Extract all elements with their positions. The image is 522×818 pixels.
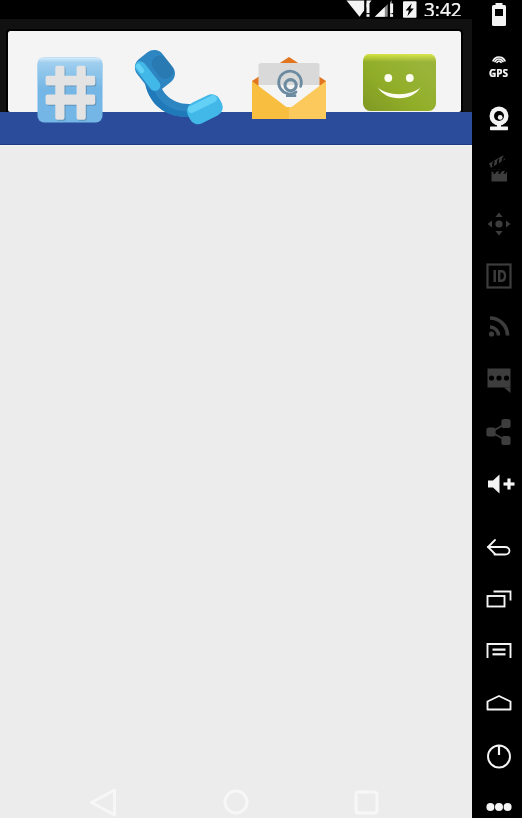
staticText: GPS (489, 66, 508, 80)
button[interactable]: Messaging app (351, 34, 461, 112)
button[interactable]: Phone app (131, 34, 241, 112)
staticText: 3:42 (424, 0, 462, 16)
button[interactable]: Hash app (15, 34, 125, 112)
button[interactable]: Email app (240, 34, 350, 112)
button[interactable]: Recent apps (343, 770, 391, 818)
button[interactable]: Back (79, 770, 127, 818)
